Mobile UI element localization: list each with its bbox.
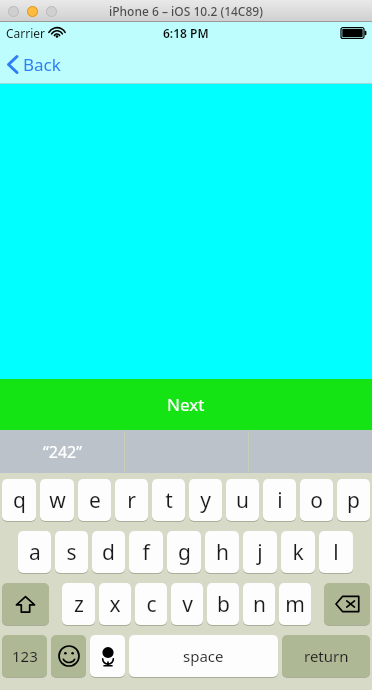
button[interactable]: Next bbox=[0, 379, 372, 430]
button[interactable]: w bbox=[40, 479, 74, 521]
staticText: p bbox=[347, 486, 360, 515]
staticText: b bbox=[217, 590, 230, 619]
staticText: v bbox=[182, 590, 193, 619]
staticText: a bbox=[29, 538, 41, 567]
button[interactable]: s bbox=[55, 531, 88, 573]
other: Backspace bbox=[324, 583, 370, 626]
button[interactable]: o bbox=[300, 479, 333, 521]
button[interactable]: c bbox=[135, 583, 167, 625]
button[interactable]: n bbox=[243, 583, 275, 625]
button[interactable]: y bbox=[189, 479, 222, 521]
staticText: “242” bbox=[43, 441, 82, 463]
button[interactable]: t bbox=[152, 479, 185, 521]
staticText: y bbox=[200, 486, 211, 515]
button[interactable]: q bbox=[2, 479, 36, 521]
button[interactable]: “242” bbox=[0, 430, 124, 473]
staticText: g bbox=[178, 538, 191, 567]
staticText: q bbox=[13, 486, 26, 515]
other: Dictation bbox=[90, 635, 125, 678]
button[interactable]: b bbox=[207, 583, 239, 625]
staticText: n bbox=[253, 590, 266, 619]
staticText: 123 bbox=[12, 646, 38, 666]
staticText: d bbox=[102, 538, 115, 567]
staticText: c bbox=[146, 590, 157, 619]
staticText: u bbox=[236, 486, 249, 515]
staticText: j bbox=[257, 538, 263, 567]
button[interactable]: d bbox=[92, 531, 125, 573]
button[interactable]: f bbox=[129, 531, 163, 573]
button[interactable]: j bbox=[243, 531, 277, 573]
button[interactable] bbox=[51, 635, 86, 677]
button[interactable]: a bbox=[18, 531, 51, 573]
button[interactable] bbox=[324, 583, 370, 625]
button[interactable]: Back bbox=[0, 47, 73, 82]
button[interactable]: u bbox=[226, 479, 259, 521]
button[interactable]: space bbox=[129, 635, 278, 677]
button[interactable]: k bbox=[281, 531, 315, 573]
staticText: l bbox=[333, 538, 339, 567]
button[interactable]: p bbox=[337, 479, 370, 521]
staticText: space bbox=[183, 646, 224, 666]
button[interactable]: l bbox=[319, 531, 353, 573]
staticText: t bbox=[165, 486, 173, 515]
button[interactable]: return bbox=[282, 635, 370, 677]
staticText: m bbox=[285, 590, 305, 619]
staticText: e bbox=[89, 486, 101, 515]
staticText: return bbox=[304, 646, 349, 666]
button[interactable]: r bbox=[115, 479, 148, 521]
staticText: w bbox=[49, 486, 66, 515]
button[interactable]: m bbox=[279, 583, 311, 625]
staticText: i bbox=[277, 486, 283, 515]
button[interactable]: g bbox=[167, 531, 201, 573]
button[interactable]: z bbox=[62, 583, 95, 625]
button[interactable] bbox=[90, 635, 125, 677]
staticText: Next bbox=[167, 393, 205, 416]
staticText: o bbox=[310, 486, 323, 515]
button[interactable]: i bbox=[263, 479, 296, 521]
button[interactable]: h bbox=[205, 531, 239, 573]
staticText: 6:18 PM bbox=[163, 25, 209, 41]
staticText: s bbox=[66, 538, 77, 567]
staticText: k bbox=[292, 538, 304, 567]
staticText: h bbox=[216, 538, 229, 567]
button[interactable]: x bbox=[99, 583, 131, 625]
other: Shift bbox=[2, 583, 49, 626]
button[interactable]: 123 bbox=[2, 635, 47, 677]
staticText: f bbox=[142, 538, 150, 567]
staticText: z bbox=[74, 590, 84, 619]
staticText: Back bbox=[23, 53, 61, 76]
button[interactable] bbox=[2, 583, 49, 625]
button[interactable]: e bbox=[78, 479, 111, 521]
staticText: r bbox=[127, 486, 136, 515]
staticText: x bbox=[109, 590, 121, 619]
button[interactable]: v bbox=[171, 583, 203, 625]
staticText: Carrier bbox=[6, 25, 46, 41]
other: Emoji bbox=[51, 635, 86, 678]
staticText: iPhone 6 – iOS 10.2 (14C89) bbox=[109, 3, 263, 19]
